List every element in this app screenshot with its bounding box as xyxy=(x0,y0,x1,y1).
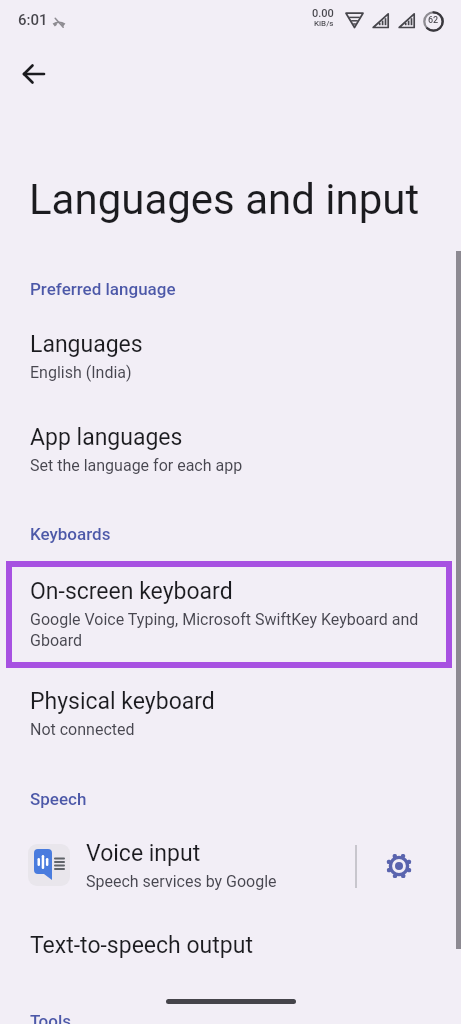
staticText: Keyboards xyxy=(30,524,111,544)
staticText: English (India) xyxy=(30,363,132,382)
staticText: 62 xyxy=(428,15,439,26)
staticText: Languages xyxy=(30,331,143,358)
staticText: App languages xyxy=(30,424,183,451)
button[interactable] xyxy=(0,568,452,660)
staticText: Speech xyxy=(30,789,87,809)
button[interactable] xyxy=(0,321,452,397)
button[interactable] xyxy=(0,678,452,754)
button[interactable] xyxy=(0,832,352,898)
staticText: On-screen keyboard xyxy=(30,578,233,605)
staticText: Speech services by Google xyxy=(86,872,277,891)
button[interactable] xyxy=(0,922,452,966)
staticText: 6:01 xyxy=(18,11,48,29)
staticText: Not connected xyxy=(30,720,135,739)
staticText: Physical keyboard xyxy=(30,688,215,715)
staticText: 0.00 xyxy=(312,7,334,20)
staticText: Set the language for each app xyxy=(30,456,243,475)
staticText: Google Voice Typing, Microsoft SwiftKey … xyxy=(30,610,419,650)
staticText: Tools xyxy=(30,1011,72,1024)
staticText: KiB/s xyxy=(314,19,334,28)
staticText: Voice input xyxy=(86,840,201,867)
button[interactable] xyxy=(0,414,452,490)
staticText: Text-to-speech output xyxy=(30,932,253,959)
staticText: Preferred language xyxy=(30,279,176,299)
button[interactable] xyxy=(385,852,413,880)
button[interactable] xyxy=(20,60,48,88)
staticText: Languages and input xyxy=(29,175,420,224)
